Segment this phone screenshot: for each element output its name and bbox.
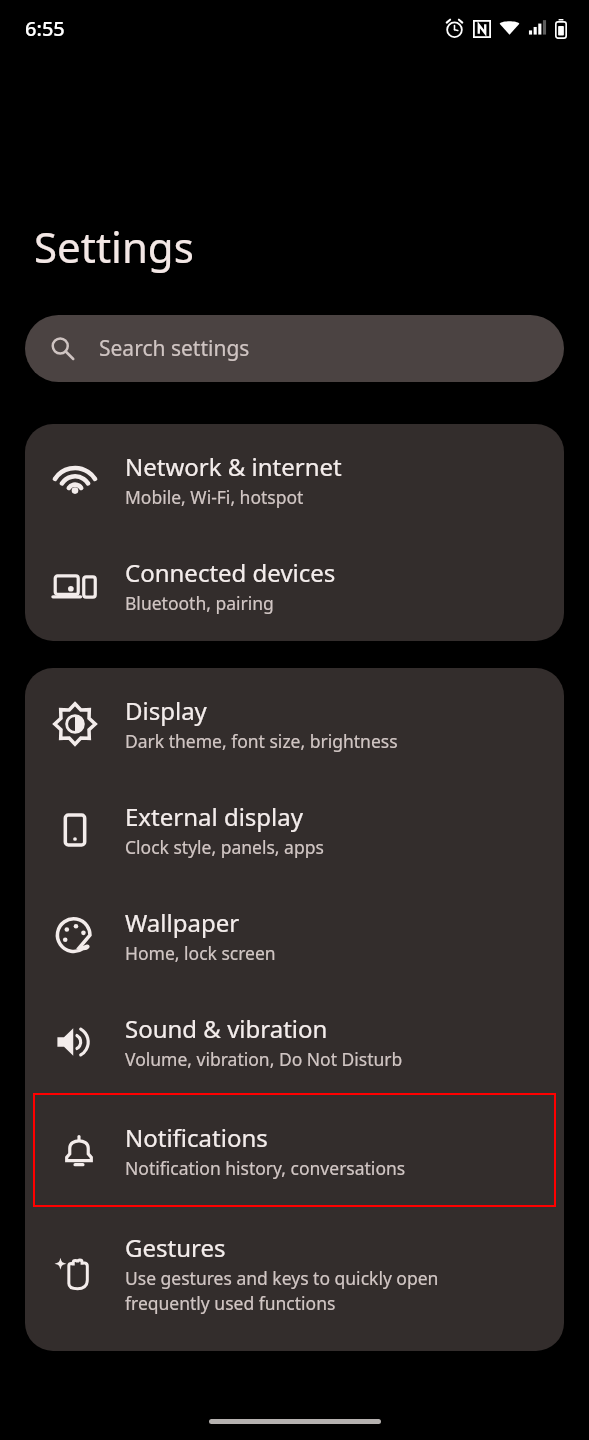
button[interactable]: Gestures xyxy=(25,1231,564,1315)
button[interactable]: Network & internet xyxy=(25,450,564,509)
other: Notifications xyxy=(57,1129,101,1173)
staticText: Clock style, panels, apps xyxy=(125,835,324,859)
other: Wallpaper xyxy=(53,914,97,958)
button[interactable]: Wallpaper xyxy=(25,906,564,965)
staticText: Network & internet xyxy=(125,450,342,483)
staticText: Dark theme, font size, brightness xyxy=(125,729,398,753)
button[interactable]: Sound & vibration xyxy=(25,1012,564,1071)
staticText: Display xyxy=(125,694,207,727)
other: Signal xyxy=(528,19,547,38)
button[interactable]: Search settings xyxy=(25,315,564,382)
staticText: 6:55 xyxy=(25,15,65,42)
staticText: Search settings xyxy=(99,334,250,363)
staticText: Use gestures and keys to quickly open fr… xyxy=(125,1266,439,1315)
other: NFC xyxy=(473,20,491,38)
staticText: Wallpaper xyxy=(125,906,240,939)
button[interactable]: Display xyxy=(25,694,564,753)
other: External display xyxy=(53,808,97,852)
button[interactable]: Connected devices xyxy=(25,556,564,615)
other: Sound & vibration xyxy=(53,1020,97,1064)
other: Alarm set xyxy=(444,18,465,39)
staticText: Notification history, conversations xyxy=(125,1156,406,1180)
other: Display xyxy=(53,702,97,746)
other: Network & internet xyxy=(52,457,98,503)
button[interactable]: External display xyxy=(25,800,564,859)
staticText: Sound & vibration xyxy=(125,1012,328,1045)
other: Battery xyxy=(555,19,567,39)
staticText: Connected devices xyxy=(125,556,336,589)
staticText: Settings xyxy=(34,218,194,275)
other: Connected devices xyxy=(52,563,98,609)
staticText: Home, lock screen xyxy=(125,941,276,965)
staticText: Gestures xyxy=(125,1231,226,1264)
staticText: External display xyxy=(125,800,303,833)
staticText: Volume, vibration, Do Not Disturb xyxy=(125,1047,403,1071)
other: Wi-Fi xyxy=(499,18,520,39)
staticText: Bluetooth, pairing xyxy=(125,591,274,615)
staticText: Mobile, Wi-Fi, hotspot xyxy=(125,485,304,509)
other: Gestures xyxy=(53,1251,97,1295)
staticText: Notifications xyxy=(125,1121,268,1154)
button[interactable]: Notifications xyxy=(33,1093,556,1207)
